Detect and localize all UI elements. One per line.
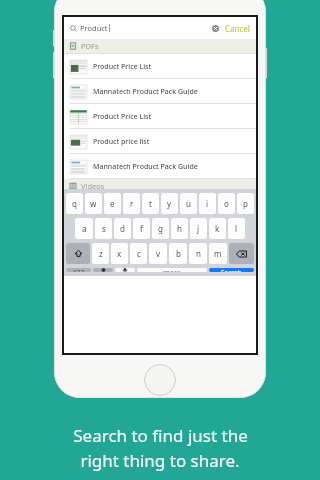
button[interactable]: o xyxy=(218,193,235,214)
button[interactable]: Backspace xyxy=(229,243,254,264)
staticText: what we do best, which is cultivating la… xyxy=(94,245,256,252)
button[interactable]: z xyxy=(92,243,109,264)
button[interactable]: Product price list xyxy=(64,129,256,154)
button[interactable]: Shift xyxy=(66,243,90,264)
staticText: j xyxy=(197,223,200,234)
button[interactable]: Emoji xyxy=(93,268,113,272)
staticText: h xyxy=(177,223,182,234)
staticText: Product Price List xyxy=(93,112,152,122)
staticText: r xyxy=(130,198,134,209)
staticText: Search to find just the xyxy=(73,424,248,447)
staticText: Launching Your Future xyxy=(94,228,172,237)
staticText: Product Price List xyxy=(93,62,152,72)
button[interactable]: a xyxy=(75,218,93,239)
staticText: m xyxy=(214,248,222,259)
staticText: Videos xyxy=(81,181,105,191)
staticText: t xyxy=(149,198,152,209)
button[interactable]: j xyxy=(190,218,207,239)
staticText: 123 xyxy=(73,268,85,272)
button[interactable]: h xyxy=(171,218,188,239)
button[interactable]: Mannatech Product Pack Guide xyxy=(64,154,256,179)
staticText: f xyxy=(140,223,143,234)
button[interactable]: 123 xyxy=(66,268,91,272)
button[interactable]: l xyxy=(228,218,245,239)
staticText: Discovering Glyconutrition xyxy=(94,197,185,206)
staticText: b xyxy=(176,248,181,259)
button[interactable]: g xyxy=(152,218,169,239)
staticText: Product xyxy=(80,23,108,33)
button[interactable]: space xyxy=(137,268,207,272)
staticText: w xyxy=(90,198,97,209)
staticText: right thing to share. xyxy=(80,449,240,472)
button[interactable]: i xyxy=(199,193,216,214)
button[interactable]: r xyxy=(123,193,140,214)
button[interactable]: n xyxy=(189,243,207,264)
button[interactable]: Product Price List xyxy=(64,104,256,129)
staticText: n xyxy=(196,248,201,259)
button[interactable]: p xyxy=(237,193,254,214)
staticText: u xyxy=(186,198,191,209)
button[interactable]: Discovering Glyconutrition xyxy=(64,194,256,225)
button[interactable]: v xyxy=(149,243,167,264)
staticText: y xyxy=(167,198,172,209)
staticText: us to the creation of an extraordinary c… xyxy=(94,214,256,221)
button[interactable]: Mannatech Product Pack Guide xyxy=(64,79,256,104)
staticText: d xyxy=(120,223,125,234)
staticText: k xyxy=(215,223,220,234)
button[interactable]: w xyxy=(85,193,102,214)
button[interactable]: f xyxy=(133,218,150,239)
staticText: g xyxy=(158,223,163,234)
button[interactable]: d xyxy=(114,218,131,239)
staticText: space xyxy=(163,268,181,272)
staticText: Cancel xyxy=(225,23,250,34)
button[interactable]: Launching Your Future xyxy=(64,225,256,256)
staticText: i xyxy=(206,198,209,209)
staticText: e xyxy=(110,198,115,209)
button[interactable]: u xyxy=(180,193,197,214)
button[interactable]: k xyxy=(209,218,226,239)
staticText: z xyxy=(99,248,103,259)
button[interactable]: t xyxy=(142,193,159,214)
staticText: Mannatech Product Pack Guide xyxy=(93,162,198,172)
button[interactable]: Search xyxy=(209,268,254,272)
button[interactable]: Home xyxy=(144,364,176,396)
staticText: Search xyxy=(221,268,242,272)
staticText: Product price list xyxy=(93,137,150,147)
staticText: v xyxy=(156,248,161,259)
staticText: l xyxy=(235,223,238,234)
staticText: Mannatech&rsquo;s passionate network of … xyxy=(94,238,256,245)
button[interactable]: s xyxy=(95,218,112,239)
button[interactable]: y xyxy=(161,193,178,214)
button[interactable]: Product xyxy=(64,17,256,39)
staticText: c xyxy=(137,248,141,259)
button[interactable]: b xyxy=(169,243,187,264)
button[interactable]: c xyxy=(130,243,147,264)
button[interactable]: x xyxy=(111,243,128,264)
button[interactable]: Cancel xyxy=(225,23,250,34)
staticText: p xyxy=(243,198,248,209)
staticText: PDFs xyxy=(81,41,99,51)
staticText: a xyxy=(82,223,87,234)
button[interactable]: Clear xyxy=(212,25,219,32)
staticText: s xyxy=(102,223,106,234)
staticText: o xyxy=(224,198,229,209)
staticText: The essence of nature and the life-alter… xyxy=(94,207,256,214)
button[interactable]: Dictate xyxy=(115,268,135,272)
button[interactable]: m xyxy=(209,243,227,264)
staticText: q xyxy=(72,198,77,209)
button[interactable]: Product Price List xyxy=(64,54,256,79)
button[interactable]: q xyxy=(66,193,83,214)
button[interactable]: e xyxy=(104,193,121,214)
staticText: Mannatech Product Pack Guide xyxy=(93,87,198,97)
staticText: x xyxy=(117,248,122,259)
